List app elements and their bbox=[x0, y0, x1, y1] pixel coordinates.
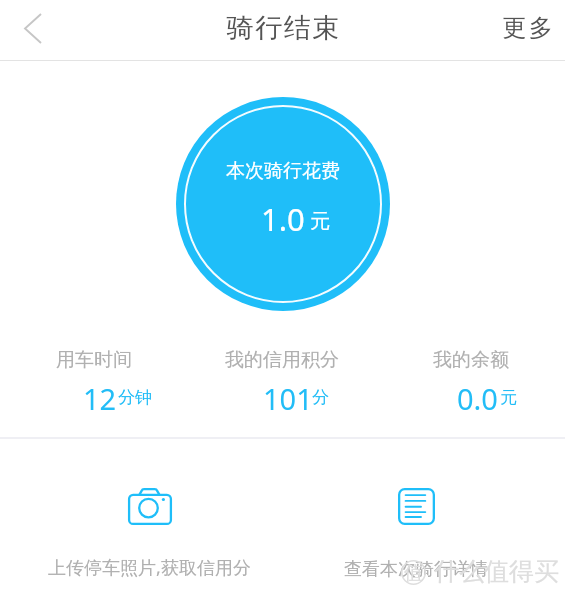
staticText: 1.0 bbox=[261, 198, 305, 240]
staticText: 什么值得买 bbox=[434, 556, 559, 587]
staticText: 我的信用积分 bbox=[225, 348, 339, 372]
button[interactable]: 我的信用积分 bbox=[182, 348, 382, 378]
staticText: 分 bbox=[312, 387, 329, 408]
staticText: 0.0 bbox=[457, 379, 498, 413]
staticText: 101 bbox=[263, 379, 313, 413]
staticText: 元 bbox=[310, 209, 330, 234]
button[interactable]: 我的余额 bbox=[371, 348, 565, 378]
staticText: 上传停车照片,获取信用分 bbox=[48, 555, 251, 580]
staticText: 本次骑行花费 bbox=[226, 159, 340, 183]
other: Ride details bbox=[398, 488, 435, 525]
staticText: 用车时间 bbox=[56, 348, 132, 372]
staticText: 分钟 bbox=[118, 387, 152, 408]
staticText: 元 bbox=[500, 387, 517, 408]
button[interactable]: 本次骑行花费 bbox=[176, 97, 390, 311]
button[interactable]: Back bbox=[0, 0, 62, 61]
staticText: 12 bbox=[83, 379, 117, 413]
button[interactable]: 用车时间 bbox=[0, 348, 194, 378]
staticText: 查看本次骑行详情 bbox=[344, 558, 488, 581]
button[interactable]: 更多 bbox=[481, 2, 565, 60]
staticText: 值 bbox=[404, 561, 423, 585]
button[interactable]: Upload parking photo bbox=[29, 480, 269, 590]
other: Upload parking photo bbox=[128, 488, 172, 525]
staticText: 更多 bbox=[501, 13, 554, 43]
staticText: 骑行结束 bbox=[226, 11, 340, 45]
staticText: 我的余额 bbox=[433, 348, 509, 372]
button[interactable]: Ride details bbox=[296, 480, 536, 590]
